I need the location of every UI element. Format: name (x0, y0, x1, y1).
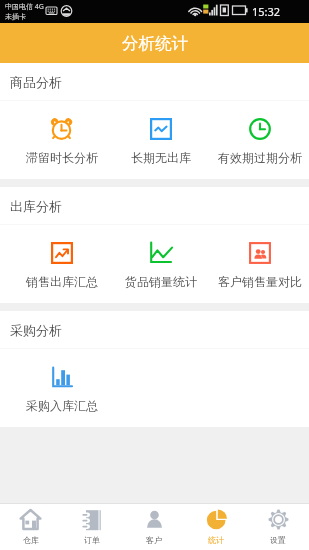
button[interactable]: 客户销售量对比 (210, 241, 309, 289)
button[interactable]: 有效期过期分析 (210, 117, 309, 165)
button[interactable]: 仓库 (0, 504, 61, 550)
staticText: 分析统计 (122, 33, 188, 54)
staticText: 有效期过期分析 (218, 150, 302, 165)
staticText: 滞留时长分析 (26, 150, 98, 165)
staticText: 货品销量统计 (125, 274, 197, 289)
staticText: 销售出库汇总 (26, 274, 98, 289)
staticText: 采购分析 (10, 322, 62, 338)
staticText: 出库分析 (10, 198, 62, 214)
button[interactable]: 设置 (247, 504, 309, 550)
staticText: 仓库 (23, 535, 39, 545)
staticText: 采购入库汇总 (26, 398, 98, 413)
staticText: 中国电信 4G (5, 2, 44, 12)
button[interactable]: 货品销量统计 (111, 241, 210, 289)
button[interactable]: 长期无出库 (111, 117, 210, 165)
staticText: 商品分析 (10, 74, 62, 90)
staticText: 客户 (146, 535, 162, 545)
staticText: 统计 (208, 535, 224, 545)
button[interactable]: 采购入库汇总 (12, 365, 111, 413)
button[interactable]: 销售出库汇总 (12, 241, 111, 289)
staticText: 设置 (270, 535, 286, 545)
button[interactable]: 统计 (185, 504, 247, 550)
staticText: 长期无出库 (131, 150, 191, 165)
button[interactable]: 订单 (61, 504, 123, 550)
staticText: 未插卡 (5, 12, 26, 21)
button[interactable]: 滞留时长分析 (12, 117, 111, 165)
button[interactable]: 客户 (123, 504, 185, 550)
staticText: 15:32 (252, 4, 281, 19)
staticText: 订单 (84, 535, 100, 545)
staticText: 客户销售量对比 (218, 274, 302, 289)
